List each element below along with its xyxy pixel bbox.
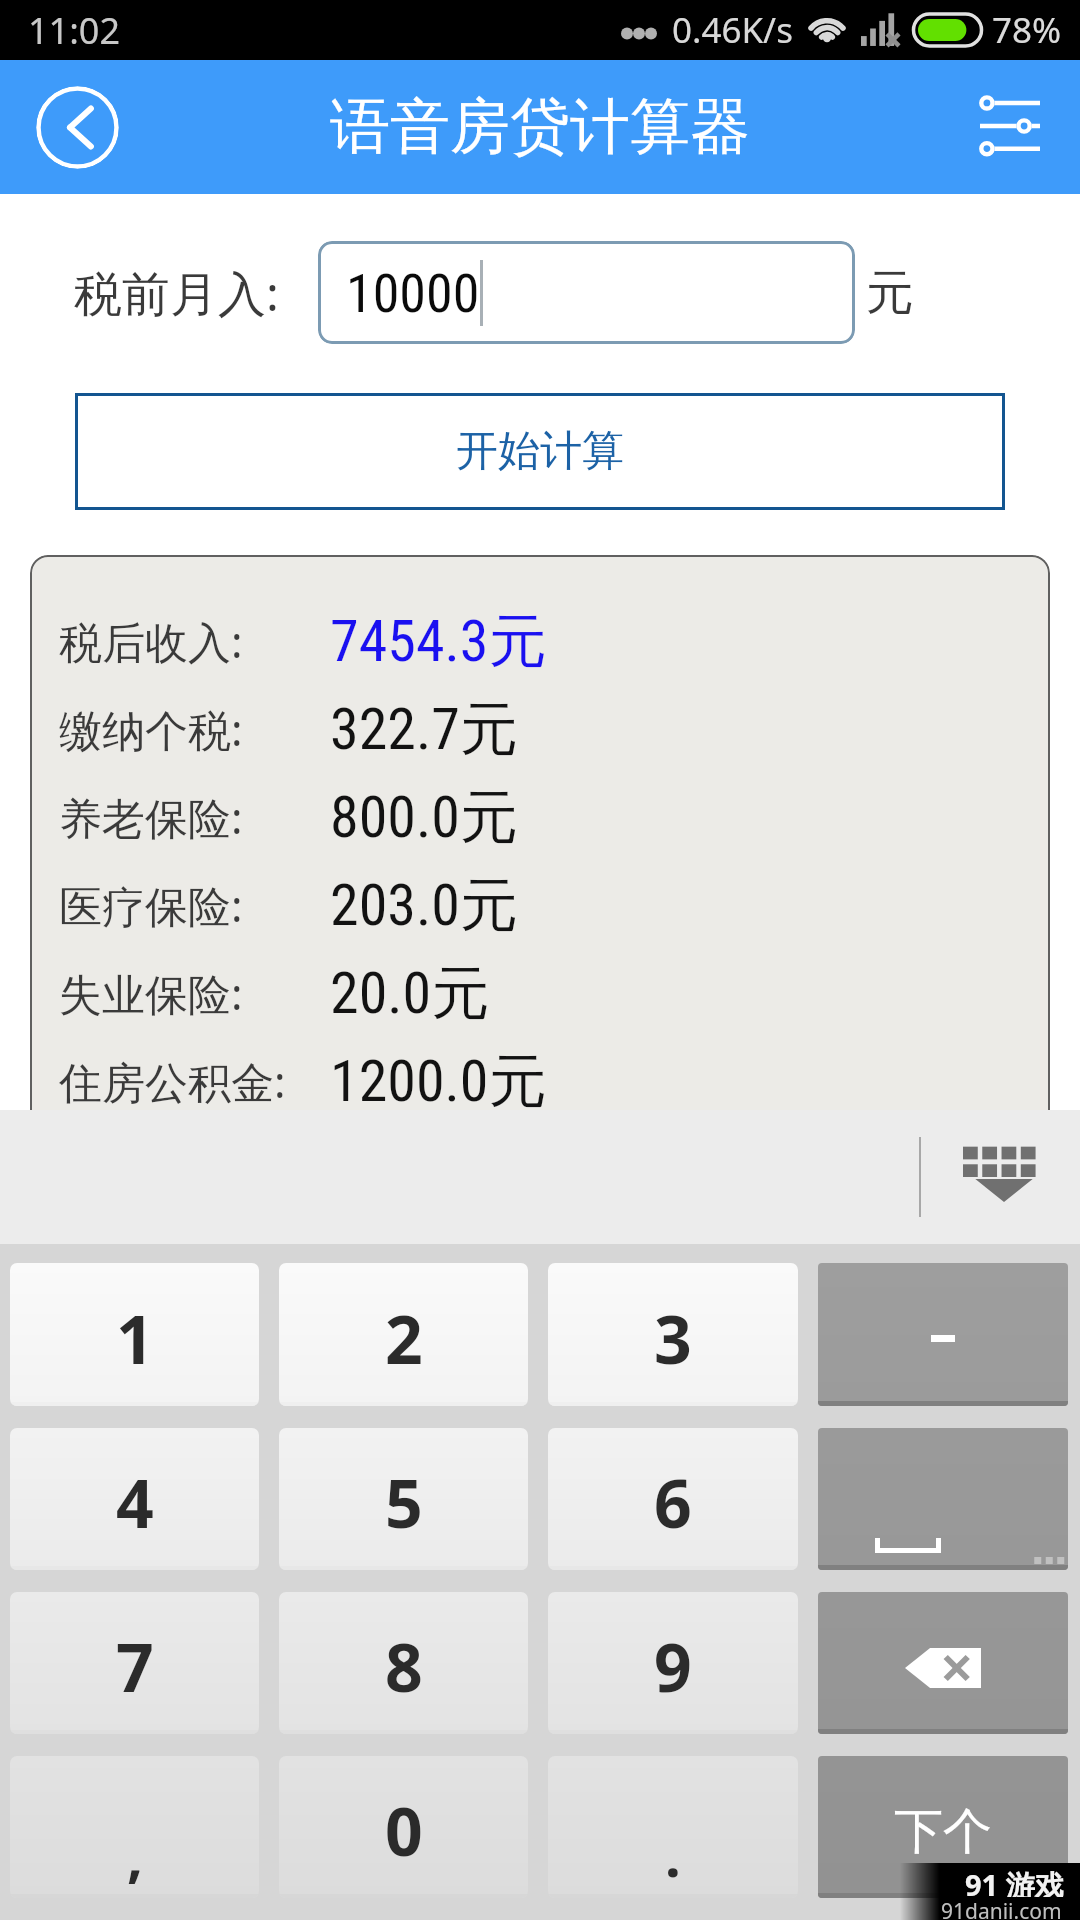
button[interactable]: 4	[10, 1428, 259, 1570]
staticText: 养老保险:	[59, 788, 243, 847]
button[interactable]: 9	[548, 1592, 798, 1734]
staticText: 20.0元	[330, 957, 490, 1030]
button[interactable]: 10000	[318, 241, 855, 344]
button[interactable]: ,	[10, 1756, 259, 1898]
button[interactable]: 5	[279, 1428, 528, 1570]
staticText: 5	[385, 1457, 423, 1547]
button[interactable]: 3	[548, 1263, 798, 1406]
staticText: 800.0元	[330, 781, 518, 854]
button[interactable]: Hide keyboard	[963, 1136, 1045, 1218]
staticText: 7	[116, 1621, 154, 1711]
button[interactable]: 开始计算	[75, 393, 1005, 510]
staticText: 322.7元	[330, 693, 518, 766]
staticText: 3	[654, 1293, 692, 1383]
staticText: 缴纳个税:	[59, 700, 243, 759]
staticText: 11:02	[28, 6, 121, 55]
staticText: 6	[654, 1457, 692, 1547]
staticText: 开始计算	[456, 425, 624, 478]
button[interactable]: Back	[36, 86, 119, 169]
staticText: 91danji.com	[941, 1897, 1062, 1919]
staticText: 1200.0元	[330, 1045, 547, 1118]
button[interactable]: 1	[10, 1263, 259, 1406]
staticText: 2	[385, 1293, 423, 1383]
staticText: 7454.3元	[330, 605, 547, 678]
button[interactable]: Minus	[818, 1263, 1068, 1406]
staticText: 10000	[346, 262, 480, 325]
staticText: 9	[654, 1621, 692, 1711]
button[interactable]: 8	[279, 1592, 528, 1734]
staticText: 税后收入:	[59, 612, 243, 671]
staticText: 医疗保险:	[59, 876, 243, 935]
staticText: .	[665, 1817, 681, 1893]
button[interactable]: 2	[279, 1263, 528, 1406]
staticText: 8	[385, 1621, 423, 1711]
staticText: ,	[127, 1817, 143, 1893]
button[interactable]: 6	[548, 1428, 798, 1570]
staticText: 78%	[992, 6, 1062, 54]
staticText: 0	[385, 1785, 423, 1875]
staticText: 203.0元	[330, 869, 518, 942]
staticText: 下个	[894, 1801, 992, 1863]
staticText: 0.46K/s	[672, 6, 793, 54]
staticText: 91 游戏	[965, 1865, 1064, 1897]
button[interactable]: 0	[279, 1756, 528, 1898]
button[interactable]: 7	[10, 1592, 259, 1734]
button[interactable]: .	[548, 1756, 798, 1898]
staticText: 1	[116, 1293, 154, 1383]
staticText: 税前月入:	[74, 260, 279, 326]
button[interactable]: Settings	[980, 94, 1040, 158]
button[interactable]: Delete	[818, 1592, 1068, 1734]
button[interactable]: Space	[818, 1428, 1068, 1570]
staticText: 4	[116, 1457, 154, 1547]
staticText: 住房公积金:	[59, 1052, 286, 1111]
staticText: 失业保险:	[59, 964, 243, 1023]
staticText: 元	[866, 263, 914, 323]
staticText: 语音房贷计算器	[330, 89, 750, 165]
button[interactable]: Next	[818, 1756, 1068, 1898]
